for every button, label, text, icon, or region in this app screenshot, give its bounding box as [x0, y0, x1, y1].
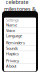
button[interactable]: Haptics	[4, 51, 36, 56]
button[interactable]: Privacy	[4, 58, 36, 63]
staticText: About	[6, 63, 16, 69]
button[interactable]: Reminders	[4, 40, 36, 45]
staticText: Settings	[6, 17, 19, 23]
button[interactable]: Language	[4, 33, 36, 38]
staticText: Add voice to celebrate	[5, 0, 34, 5]
staticText: Language	[6, 33, 22, 38]
staticText: Privacy	[6, 58, 19, 63]
button[interactable]: Voice	[4, 28, 36, 33]
button[interactable]: Sounds	[4, 46, 36, 51]
staticText: milestones & progress	[4, 5, 36, 20]
button[interactable]: Name	[4, 22, 36, 27]
staticText: Sounds	[6, 45, 18, 51]
staticText: Reminders	[6, 40, 25, 45]
staticText: Voice	[6, 28, 15, 33]
button[interactable]: About	[4, 63, 36, 68]
staticText: Name	[6, 22, 17, 28]
staticText: Haptics	[6, 51, 19, 56]
